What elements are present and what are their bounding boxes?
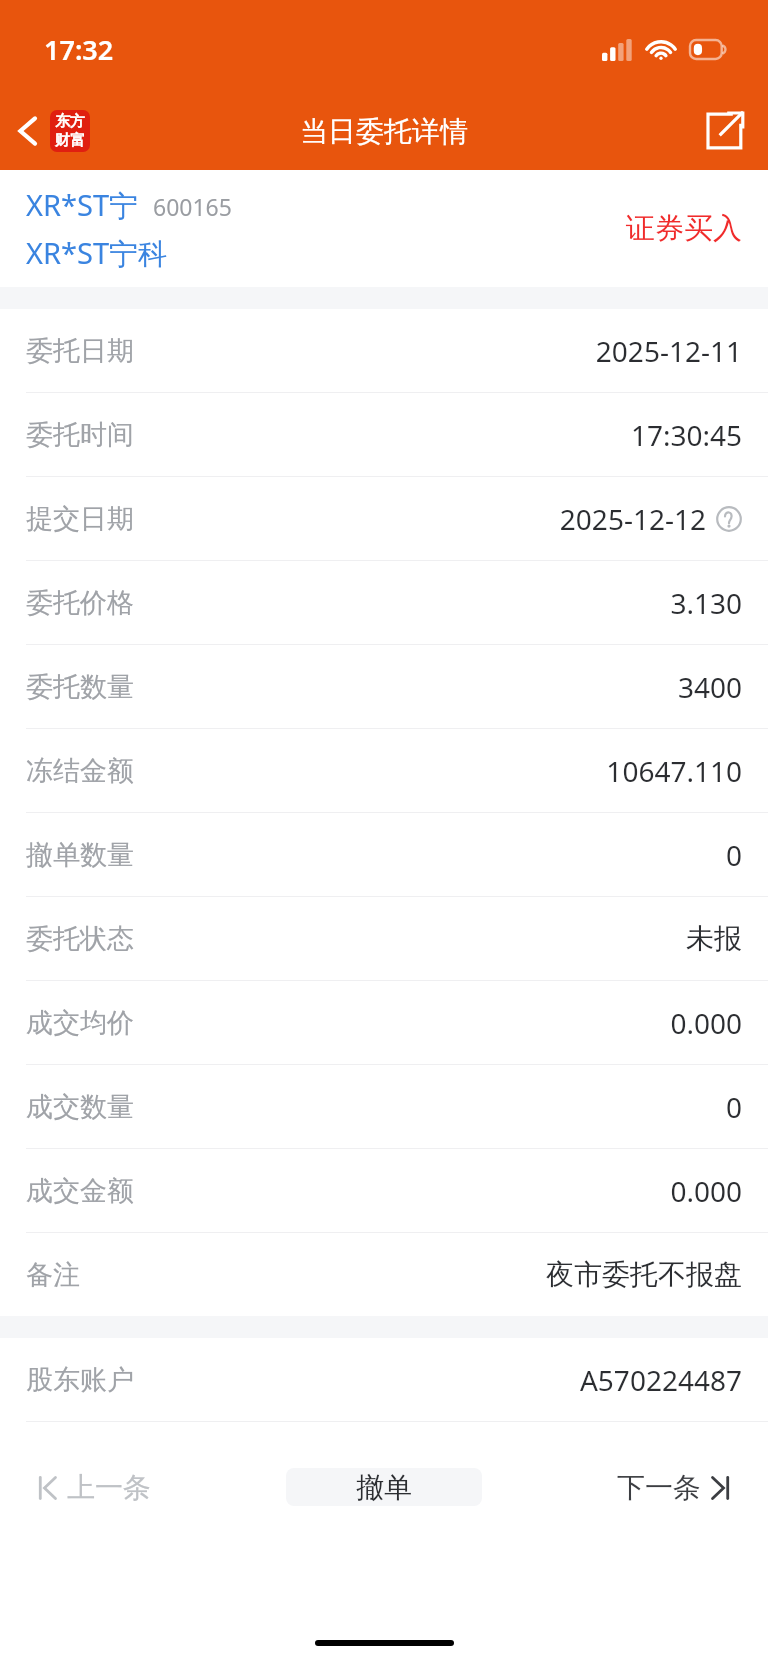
staticText: 撤单数量 <box>26 838 134 872</box>
staticText: 2025-12-11 <box>595 332 742 370</box>
staticText: 股东账户 <box>26 1363 134 1397</box>
staticText: 冻结金额 <box>26 754 134 788</box>
button[interactable]: 上一条 <box>30 1456 159 1519</box>
button[interactable]: 撤单 <box>286 1468 482 1506</box>
staticText: 财富 <box>55 131 85 150</box>
staticText: 成交均价 <box>26 1006 134 1040</box>
button[interactable]: 委托时间 <box>0 393 768 476</box>
button[interactable]: 撤单数量 <box>0 813 768 896</box>
staticText: 当日委托详情 <box>300 114 468 149</box>
button[interactable]: 下一条 <box>609 1456 738 1519</box>
staticText: 委托数量 <box>26 670 134 704</box>
button[interactable]: 股东账户 <box>0 1338 768 1421</box>
staticText: 3400 <box>677 668 742 706</box>
staticText: XR*ST宁科 <box>26 233 168 273</box>
button[interactable]: 委托价格 <box>0 561 768 644</box>
staticText: 0 <box>725 836 742 874</box>
button[interactable]: 委托日期 <box>0 309 768 392</box>
staticText: 成交金额 <box>26 1174 134 1208</box>
staticText: 委托价格 <box>26 586 134 620</box>
button[interactable]: 成交数量 <box>0 1065 768 1148</box>
staticText: 10647.110 <box>606 752 742 790</box>
button[interactable]: Back <box>0 102 100 160</box>
staticText: 0.000 <box>670 1004 742 1042</box>
staticText: 委托日期 <box>26 334 134 368</box>
staticText: 0 <box>725 1088 742 1126</box>
staticText: 证券买入 <box>626 210 742 247</box>
staticText: 17:30:45 <box>630 416 742 454</box>
staticText: 600165 <box>153 191 232 222</box>
button[interactable]: 成交金额 <box>0 1149 768 1232</box>
staticText: 未报 <box>686 921 742 956</box>
staticText: 夜市委托不报盘 <box>546 1257 742 1292</box>
staticText: 撤单 <box>356 1470 412 1505</box>
staticText: 上一条 <box>67 1470 151 1505</box>
button[interactable]: 成交均价 <box>0 981 768 1064</box>
staticText: 下一条 <box>617 1470 701 1505</box>
staticText: XR*ST宁 <box>26 185 139 225</box>
staticText: 0.000 <box>670 1172 742 1210</box>
staticText: 备注 <box>26 1258 80 1292</box>
button[interactable]: 委托状态 <box>0 897 768 980</box>
staticText: 东方 <box>55 112 85 131</box>
button[interactable]: 提交日期 <box>0 477 768 560</box>
staticText: 3.130 <box>670 584 742 622</box>
staticText: A570224487 <box>579 1361 742 1399</box>
staticText: 2025-12-12 <box>559 500 706 538</box>
staticText: 委托时间 <box>26 418 134 452</box>
button[interactable]: 委托数量 <box>0 645 768 728</box>
staticText: 17:32 <box>44 31 114 68</box>
button[interactable]: XR*ST宁 <box>0 170 768 287</box>
staticText: 提交日期 <box>26 502 134 536</box>
staticText: 成交数量 <box>26 1090 134 1124</box>
staticText: 委托状态 <box>26 922 134 956</box>
button[interactable]: 备注 <box>0 1233 768 1316</box>
button[interactable]: 冻结金额 <box>0 729 768 812</box>
button[interactable]: Share <box>680 99 768 163</box>
